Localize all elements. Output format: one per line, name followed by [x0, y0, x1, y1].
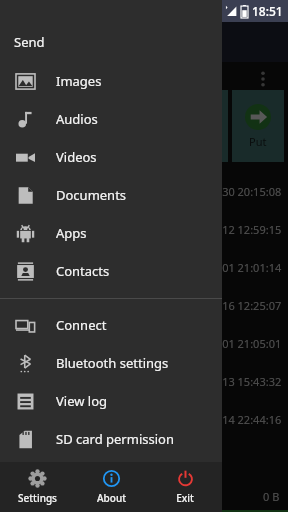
- staticText: About: [97, 491, 126, 505]
- staticText: 11-01 21:05:01: [206, 336, 282, 351]
- button[interactable]: Images: [0, 62, 222, 100]
- staticText: Contacts: [56, 262, 110, 280]
- button[interactable]: 10-13 15:43:32: [0, 362, 288, 400]
- staticText: Exit: [176, 491, 194, 505]
- staticText: Images: [56, 72, 102, 90]
- staticText: SD card permission: [56, 430, 174, 448]
- button[interactable]: 10-14 22:44:16: [0, 400, 288, 438]
- staticText: Documents: [56, 186, 127, 204]
- button[interactable]: 11-01 21:05:01: [0, 324, 288, 362]
- button[interactable]: 04-30 20:15:08: [0, 172, 288, 210]
- staticText: Send: [14, 33, 45, 51]
- button[interactable]: Apps: [0, 214, 222, 252]
- button[interactable]: Connect: [0, 306, 222, 344]
- staticText: View log: [56, 392, 108, 410]
- button[interactable]: Videos: [0, 138, 222, 176]
- staticText: 10-14 22:44:16: [206, 412, 282, 427]
- staticText: 12-01 21:01:14: [206, 260, 282, 275]
- button[interactable]: Bluetooth settings: [0, 344, 222, 382]
- staticText: Settings: [18, 491, 57, 505]
- staticText: 12-12 12:59:15: [206, 222, 282, 237]
- button[interactable]: Audios: [0, 100, 222, 138]
- button[interactable]: 12-12 12:59:15: [0, 210, 288, 248]
- button[interactable]: Exit: [148, 462, 222, 512]
- staticText: Connect: [56, 316, 107, 334]
- staticText: 0 B: [263, 489, 280, 504]
- button[interactable]: Documents: [0, 176, 222, 214]
- staticText: 10-16 12:25:07: [206, 298, 282, 313]
- staticText: 18:51: [252, 3, 283, 19]
- staticText: Put: [249, 134, 267, 149]
- staticText: Bluetooth settings: [56, 354, 169, 372]
- button[interactable]: About: [74, 462, 148, 512]
- staticText: Videos: [56, 148, 97, 166]
- button[interactable]: View log: [0, 382, 222, 420]
- staticText: Audios: [56, 110, 98, 128]
- staticText: 04-30 20:15:08: [206, 184, 282, 199]
- button[interactable]: More options: [252, 68, 274, 90]
- button[interactable]: 12-01 21:01:14: [0, 248, 288, 286]
- button[interactable]: Put: [232, 90, 284, 162]
- button[interactable]: Contacts: [0, 252, 222, 290]
- button[interactable]: SD card permission: [0, 420, 222, 458]
- staticText: 10-13 15:43:32: [206, 374, 282, 389]
- button[interactable]: Settings: [0, 462, 74, 512]
- staticText: Apps: [56, 224, 87, 242]
- button[interactable]: 10-16 12:25:07: [0, 286, 288, 324]
